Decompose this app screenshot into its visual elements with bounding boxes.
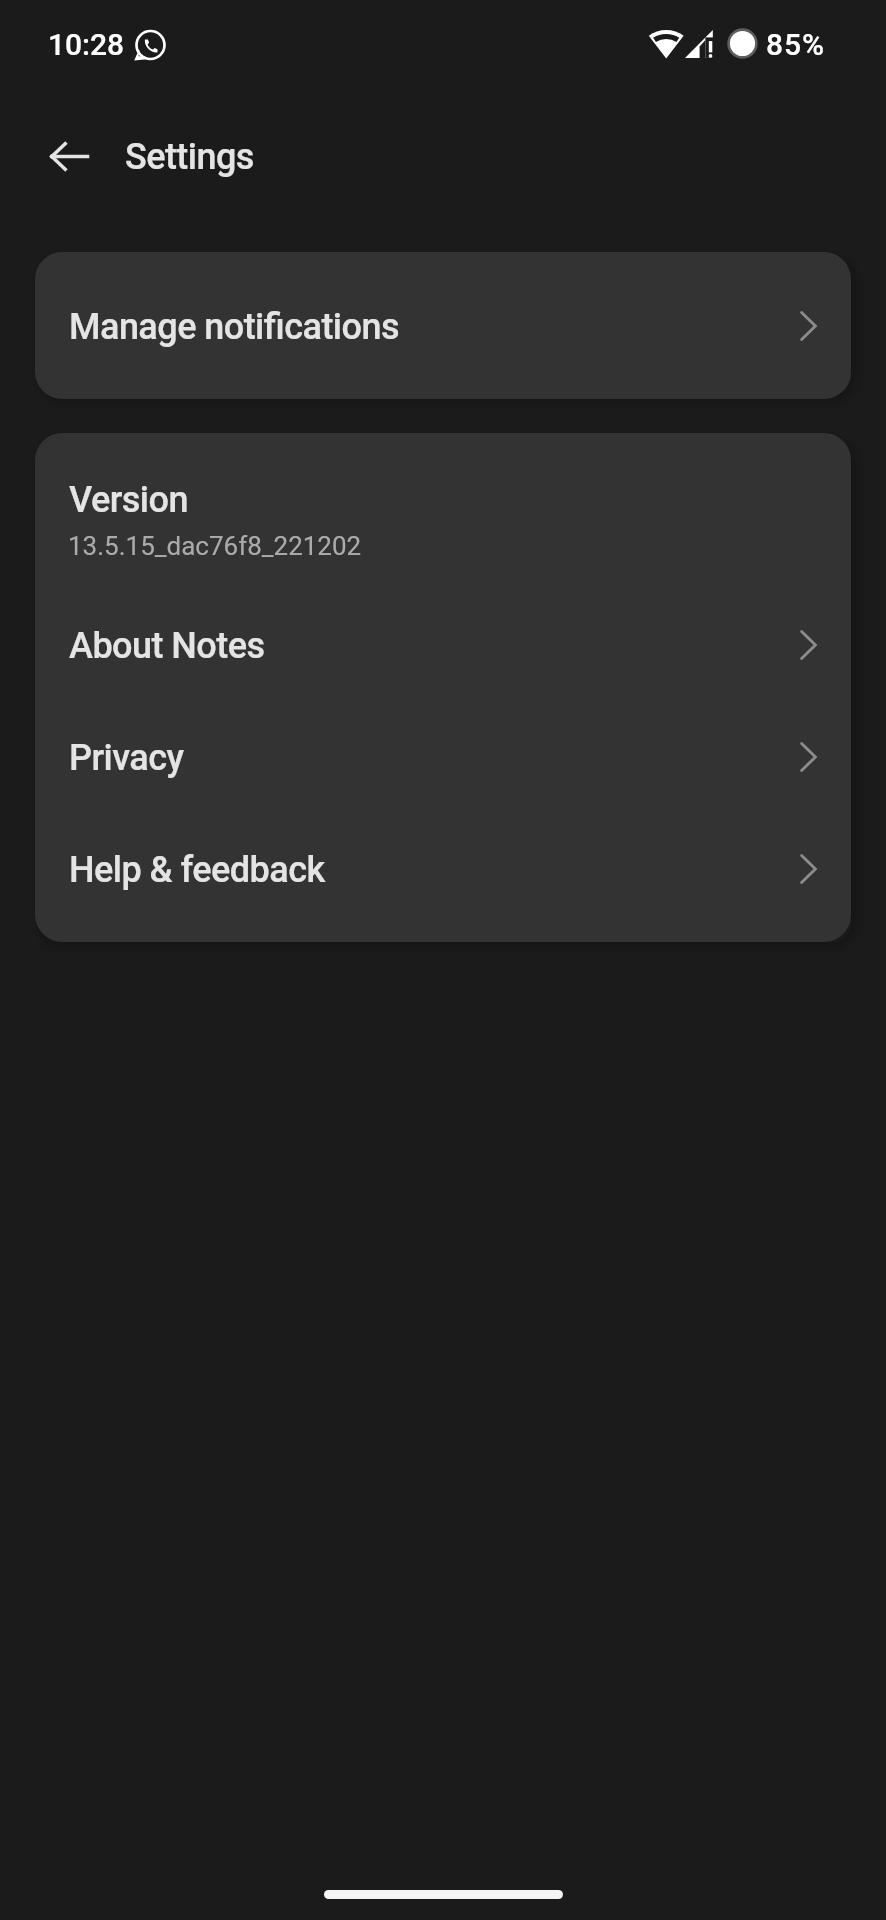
staticText: Help & feedback [69, 849, 325, 891]
staticText: Version [69, 479, 188, 521]
staticText: 10:28 [48, 27, 125, 62]
button[interactable]: About Notes [35, 589, 851, 701]
staticText: Manage notifications [69, 306, 399, 348]
button[interactable]: Version [35, 433, 851, 589]
staticText: 85% [766, 27, 825, 62]
staticText: 13.5.15_dac76f8_221202 [68, 531, 362, 561]
staticText: Privacy [69, 737, 184, 779]
button[interactable]: Help & feedback [35, 813, 851, 925]
button[interactable]: Back [39, 126, 99, 186]
button[interactable]: Privacy [35, 701, 851, 813]
staticText: About Notes [69, 625, 265, 667]
staticText: Settings [125, 136, 254, 178]
button[interactable]: Manage notifications [35, 252, 851, 399]
